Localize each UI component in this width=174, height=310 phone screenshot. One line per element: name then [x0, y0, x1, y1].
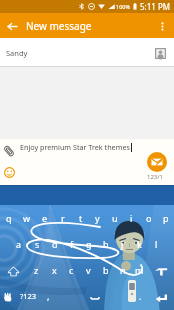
button[interactable]: u: [106, 205, 123, 232]
staticText: g: [86, 238, 92, 250]
button[interactable]: Backspace: [148, 258, 174, 284]
button[interactable]: g: [80, 232, 97, 258]
staticText: c: [69, 264, 74, 276]
staticText: 5:11 PM: [140, 1, 171, 12]
button[interactable]: Emoji: [0, 162, 19, 182]
staticText: w: [23, 212, 31, 224]
staticText: s: [35, 238, 40, 250]
staticText: f: [70, 238, 74, 250]
staticText: n: [120, 264, 126, 276]
button[interactable]: o: [140, 205, 157, 232]
button[interactable]: v: [80, 258, 97, 284]
staticText: j: [121, 238, 124, 250]
button[interactable]: a: [10, 232, 28, 258]
staticText: Sandy: [6, 48, 28, 58]
button[interactable]: d: [46, 232, 63, 258]
staticText: Enjoy premium Star Trek themes: [20, 142, 130, 152]
staticText: t: [79, 212, 83, 224]
staticText: New message: [26, 19, 92, 33]
button[interactable]: j: [114, 232, 131, 258]
button[interactable]: p: [157, 205, 174, 232]
button[interactable]: ,: [40, 284, 57, 310]
button[interactable]: Space: [57, 284, 132, 310]
button[interactable]: n: [114, 258, 131, 284]
button[interactable]: Back: [0, 14, 24, 38]
button[interactable]: Attach: [0, 141, 19, 161]
button[interactable]: q: [0, 205, 18, 232]
button[interactable]: m: [131, 258, 148, 284]
staticText: 123/1: [147, 173, 167, 181]
button[interactable]: Add contact: [148, 41, 172, 65]
staticText: b: [103, 264, 109, 276]
staticText: y: [95, 212, 100, 224]
staticText: d: [52, 238, 58, 250]
staticText: r: [61, 212, 65, 224]
button[interactable]: r: [54, 205, 72, 232]
staticText: .: [139, 290, 142, 302]
button[interactable]: c: [63, 258, 80, 284]
button[interactable]: f: [63, 232, 80, 258]
button[interactable]: s: [28, 232, 46, 258]
button[interactable]: ?123: [16, 284, 40, 310]
staticText: k: [137, 238, 142, 250]
button[interactable]: y: [89, 205, 106, 232]
staticText: i: [130, 212, 133, 224]
button[interactable]: w: [18, 205, 36, 232]
button[interactable]: k: [131, 232, 148, 258]
button[interactable]: h: [97, 232, 114, 258]
button[interactable]: .: [132, 284, 149, 310]
button[interactable]: Voice input: [0, 284, 16, 310]
staticText: u: [112, 212, 118, 224]
button[interactable]: More options: [150, 14, 174, 38]
staticText: p: [163, 212, 169, 224]
button[interactable]: Shift: [0, 258, 27, 284]
button[interactable]: b: [97, 258, 114, 284]
staticText: 100%: [116, 3, 131, 10]
staticText: ,: [47, 290, 50, 302]
button[interactable]: x: [45, 258, 63, 284]
staticText: ?123: [20, 291, 37, 301]
staticText: a: [16, 238, 22, 250]
button[interactable]: t: [72, 205, 89, 232]
button[interactable]: e: [36, 205, 54, 232]
button[interactable]: z: [27, 258, 45, 284]
staticText: h: [103, 238, 109, 250]
staticText: l: [155, 238, 158, 250]
staticText: e: [42, 212, 48, 224]
staticText: o: [146, 212, 152, 224]
button[interactable]: Enter: [149, 284, 174, 310]
staticText: m: [135, 264, 144, 276]
staticText: v: [86, 264, 91, 276]
staticText: x: [52, 264, 57, 276]
button[interactable]: i: [123, 205, 140, 232]
staticText: q: [6, 212, 12, 224]
button[interactable]: l: [148, 232, 165, 258]
staticText: z: [34, 264, 39, 276]
button[interactable]: Send: [147, 152, 167, 172]
